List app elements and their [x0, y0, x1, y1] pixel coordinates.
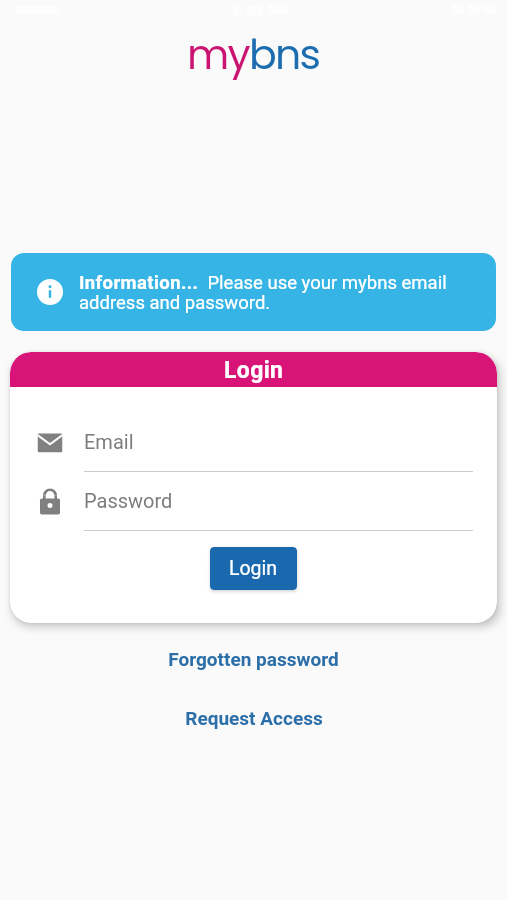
button[interactable]: Request Access [0, 702, 507, 734]
button[interactable]: Information... Please use your mybns ema… [11, 253, 496, 331]
button[interactable]: Forgotten password [0, 643, 507, 675]
staticText: mybns [187, 26, 320, 83]
staticText: Forgotten password [168, 648, 339, 670]
staticText: Login [229, 557, 278, 580]
staticText: Password [84, 489, 173, 512]
staticText: Login [224, 357, 284, 384]
staticText: Request Access [185, 707, 323, 729]
staticText: Information... Please use your mybns ema… [79, 272, 482, 313]
staticText: Email [84, 430, 134, 453]
button[interactable]: Login [210, 547, 297, 590]
